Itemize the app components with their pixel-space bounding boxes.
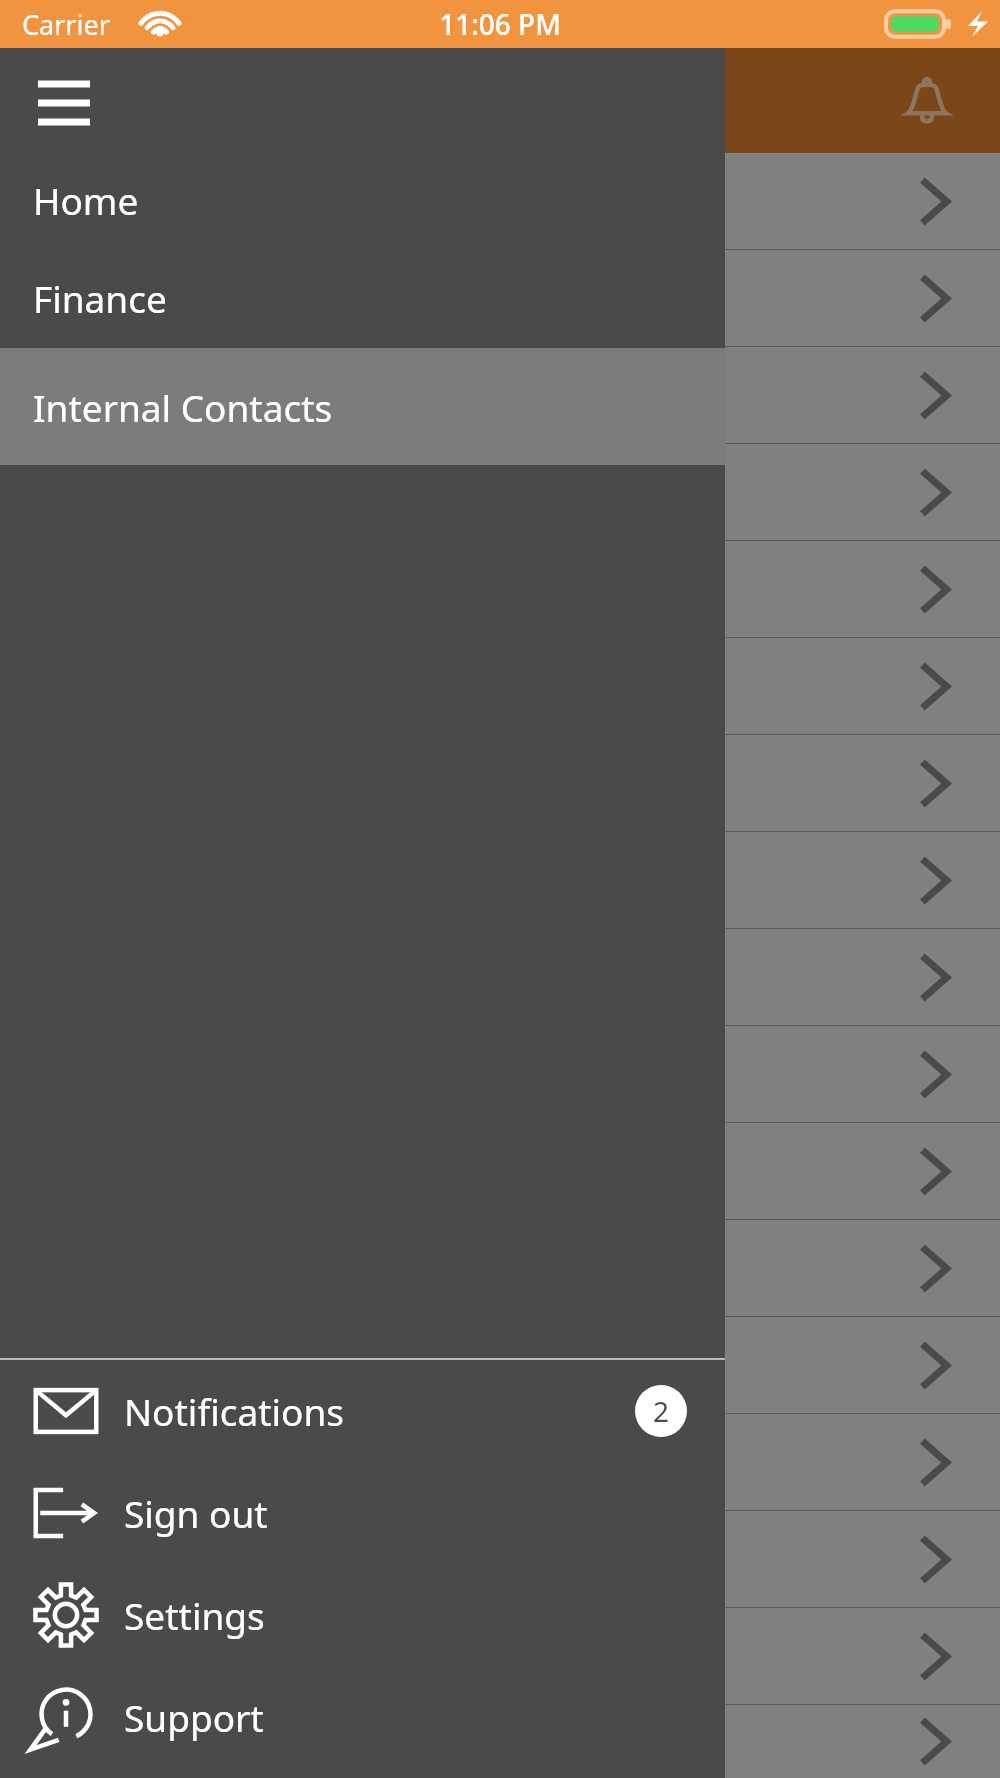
button[interactable]: Sign out	[0, 1462, 725, 1564]
staticText: Carrier	[22, 6, 110, 43]
button[interactable]	[0, 347, 1000, 444]
button[interactable]	[0, 1414, 1000, 1511]
button[interactable]: Menu	[26, 65, 102, 141]
staticText: Sign out	[124, 1488, 268, 1538]
button[interactable]	[0, 638, 1000, 735]
button[interactable]: Settings	[0, 1564, 725, 1666]
staticText: Settings	[124, 1590, 265, 1640]
button[interactable]	[0, 735, 1000, 832]
button[interactable]: Internal Contacts	[0, 348, 725, 465]
staticText: Home	[33, 175, 139, 225]
button[interactable]	[0, 444, 1000, 541]
button[interactable]	[0, 929, 1000, 1026]
button[interactable]	[0, 1220, 1000, 1317]
button[interactable]: Notifications	[0, 1360, 725, 1462]
button[interactable]: Support	[0, 1666, 725, 1768]
button[interactable]	[0, 832, 1000, 929]
staticText: Internal Contacts	[33, 382, 333, 432]
staticText: Finance	[33, 273, 167, 323]
button[interactable]	[0, 1026, 1000, 1123]
staticText: 2	[653, 1392, 670, 1430]
button[interactable]	[0, 1608, 1000, 1705]
button[interactable]	[0, 153, 1000, 250]
staticText: Support	[124, 1692, 264, 1742]
button[interactable]	[0, 541, 1000, 638]
button[interactable]: Home	[0, 153, 725, 247]
button[interactable]	[0, 1705, 1000, 1778]
button[interactable]: Notifications	[895, 69, 959, 133]
staticText: 11:06 PM	[439, 5, 561, 43]
button[interactable]: Finance	[0, 247, 725, 348]
button[interactable]	[0, 1317, 1000, 1414]
staticText: Notifications	[124, 1386, 345, 1436]
button[interactable]	[0, 1511, 1000, 1608]
button[interactable]	[0, 250, 1000, 347]
button[interactable]	[0, 1123, 1000, 1220]
